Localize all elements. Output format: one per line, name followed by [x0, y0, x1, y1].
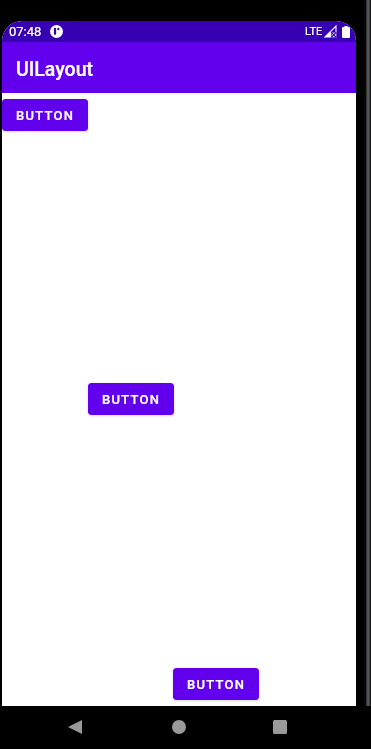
button[interactable]: BUTTON — [173, 668, 259, 700]
button[interactable]: BUTTON — [88, 383, 174, 415]
staticText: 07:48 — [9, 24, 42, 39]
staticText: BUTTON — [187, 677, 246, 692]
staticText: BUTTON — [102, 392, 161, 407]
button[interactable]: Back — [56, 708, 94, 746]
staticText: UILayout — [16, 58, 93, 81]
button[interactable]: Recents — [261, 708, 299, 746]
staticText: BUTTON — [16, 108, 75, 123]
button[interactable]: Home — [160, 708, 198, 746]
staticText: LTE — [305, 25, 323, 38]
button[interactable]: BUTTON — [2, 99, 88, 131]
